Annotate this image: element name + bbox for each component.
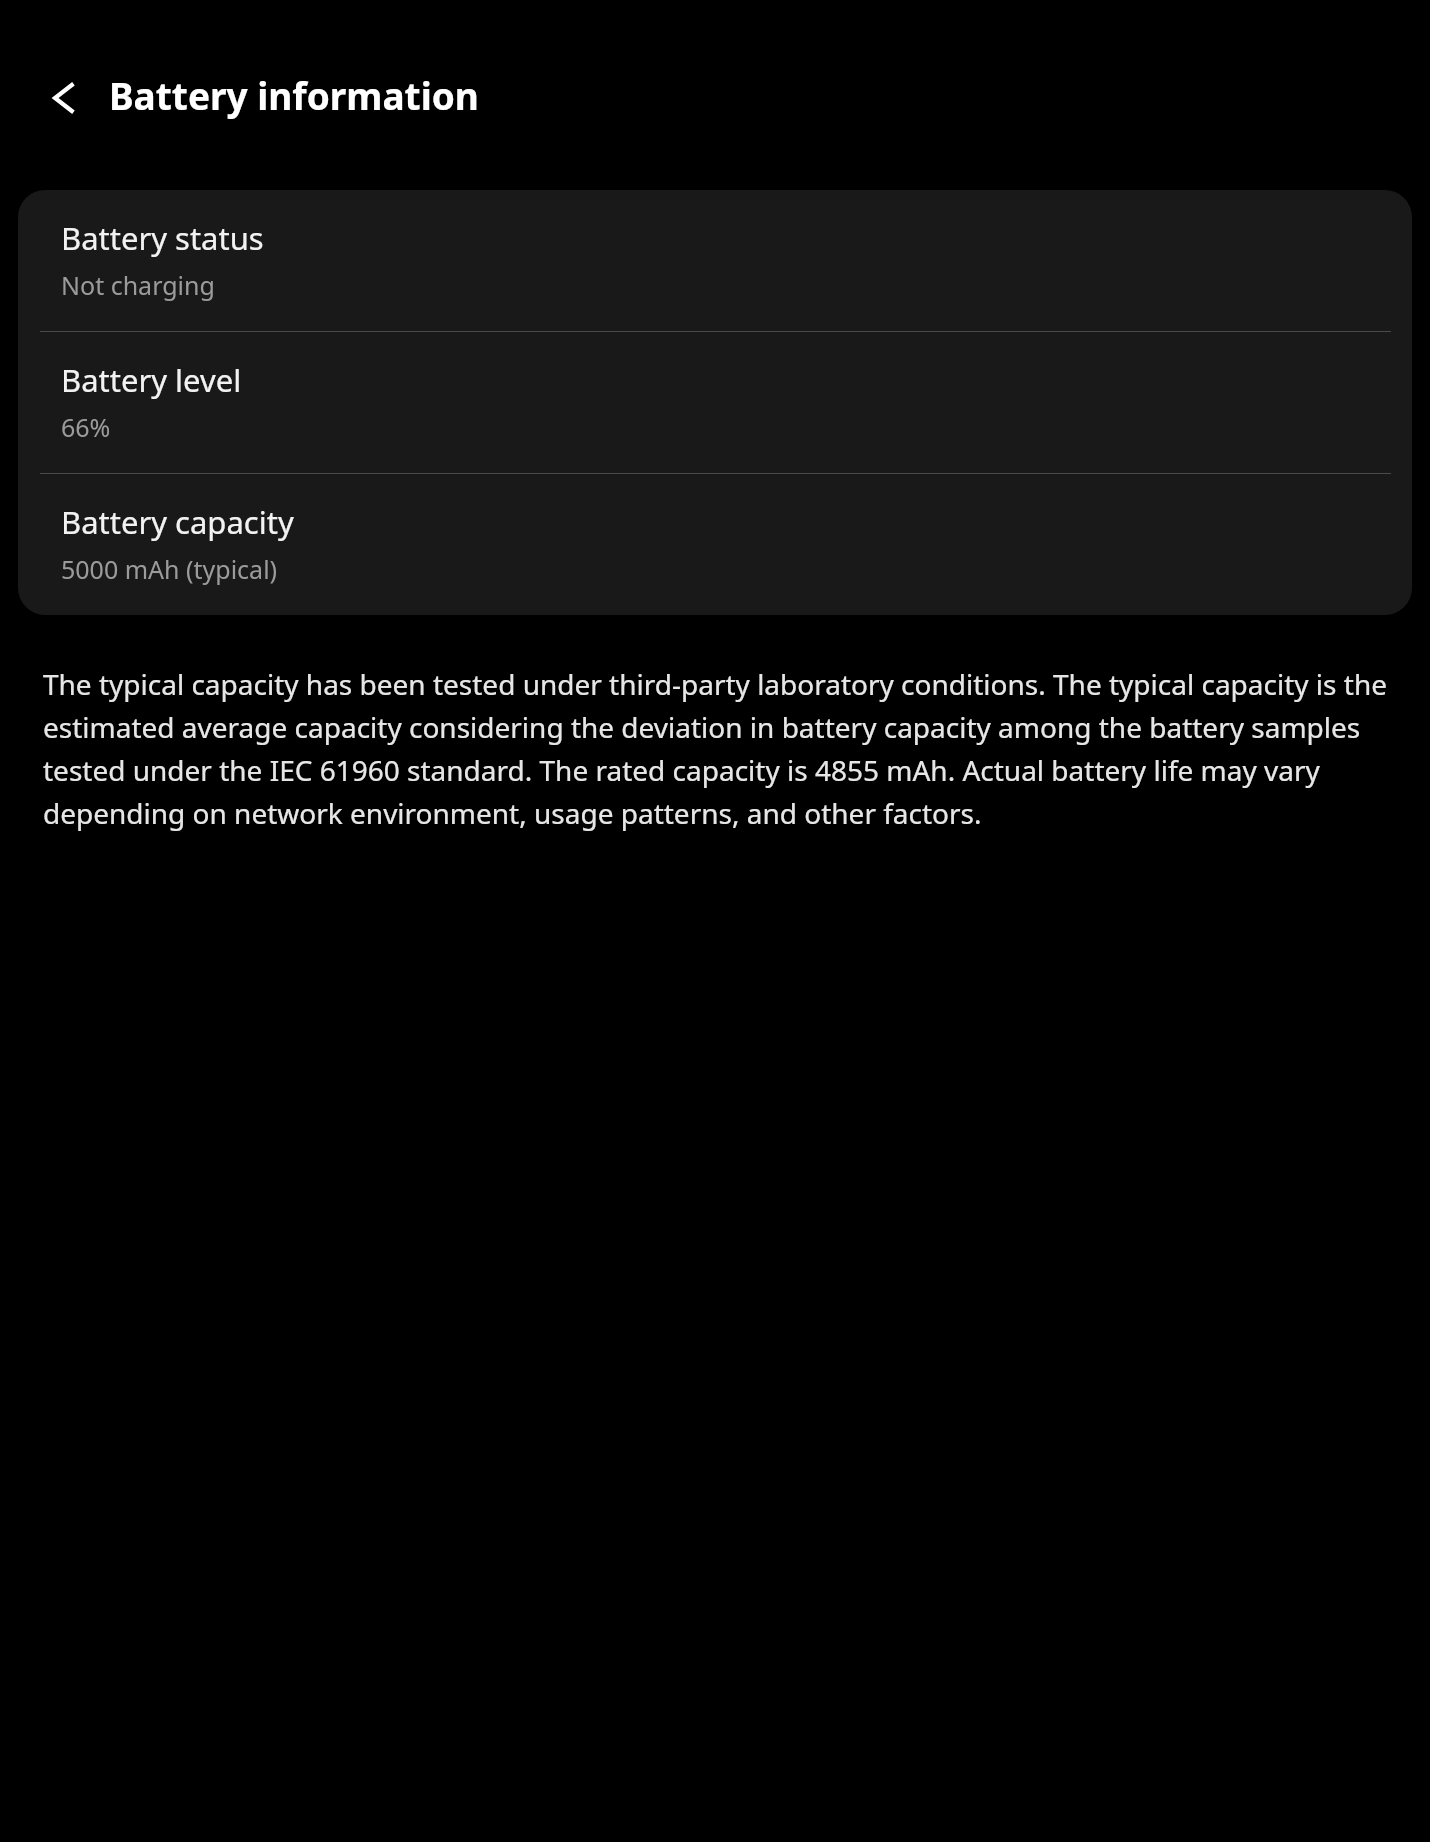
staticText: Battery status bbox=[61, 217, 264, 259]
staticText: 66% bbox=[61, 410, 111, 444]
staticText: Battery information bbox=[109, 70, 479, 120]
button[interactable]: Battery capacity bbox=[18, 474, 1412, 615]
staticText: Not charging bbox=[61, 268, 215, 302]
staticText: 5000 mAh (typical) bbox=[61, 552, 278, 586]
staticText: The typical capacity has been tested und… bbox=[43, 661, 1387, 833]
staticText: Battery capacity bbox=[61, 501, 294, 543]
button[interactable]: Battery status bbox=[18, 190, 1412, 331]
button[interactable]: Back bbox=[26, 58, 100, 132]
button[interactable]: Battery level bbox=[18, 332, 1412, 473]
staticText: Battery level bbox=[61, 359, 242, 401]
